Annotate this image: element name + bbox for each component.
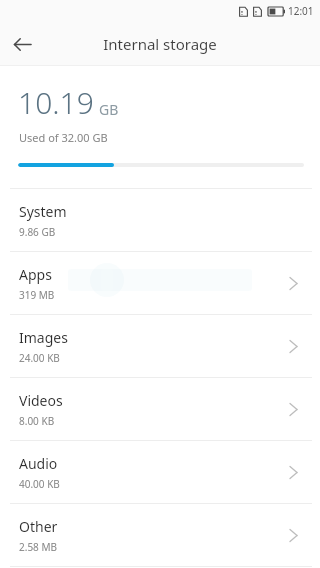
- button[interactable]: Audio: [0, 441, 320, 503]
- staticText: Internal storage: [103, 34, 217, 54]
- staticText: System: [19, 202, 67, 221]
- staticText: Other: [19, 517, 58, 536]
- staticText: Images: [19, 328, 68, 347]
- staticText: 12:01: [288, 4, 314, 18]
- button[interactable]: Videos: [0, 378, 320, 440]
- staticText: Audio: [19, 454, 58, 473]
- staticText: 10.19: [18, 82, 94, 123]
- staticText: Used of 32.00 GB: [19, 130, 108, 145]
- button[interactable]: Images: [0, 315, 320, 377]
- button[interactable]: Back: [0, 22, 44, 66]
- staticText: Apps: [19, 265, 52, 284]
- staticText: 40.00 KB: [19, 477, 60, 491]
- staticText: 24.00 KB: [19, 351, 60, 365]
- staticText: 9.86 GB: [19, 225, 56, 239]
- button[interactable]: System: [0, 189, 320, 251]
- button[interactable]: Other: [0, 504, 320, 566]
- staticText: 2.58 MB: [19, 540, 58, 554]
- button[interactable]: Apps: [0, 252, 320, 314]
- staticText: 8.00 KB: [19, 414, 55, 428]
- staticText: 319 MB: [19, 288, 55, 302]
- staticText: Videos: [19, 391, 63, 410]
- staticText: GB: [99, 100, 119, 119]
